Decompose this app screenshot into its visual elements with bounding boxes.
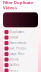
- staticText: Notes: [10, 69, 18, 72]
- staticText: Blurry: [10, 58, 18, 61]
- staticText: Selfies: [10, 63, 19, 67]
- staticText: Filter Duplicate: [3, 0, 33, 5]
- button[interactable]: Similar: [3, 35, 38, 40]
- button[interactable]: Selfies: [3, 62, 38, 68]
- staticText: Videos: [3, 5, 17, 10]
- staticText: Live Photos: [10, 47, 26, 50]
- button[interactable]: Notes: [3, 68, 38, 72]
- button[interactable]: Screenshots: [3, 40, 38, 46]
- staticText: Large Files: [10, 52, 24, 56]
- staticText: Screenshots: [10, 41, 26, 45]
- button[interactable]: Live Photos: [3, 46, 38, 51]
- staticText: Duplicates: [10, 30, 24, 34]
- button[interactable]: Large Files: [3, 51, 38, 57]
- button[interactable]: Duplicates: [3, 29, 38, 35]
- button[interactable]: Blurry: [3, 57, 38, 62]
- staticText: Similar: [10, 36, 18, 39]
